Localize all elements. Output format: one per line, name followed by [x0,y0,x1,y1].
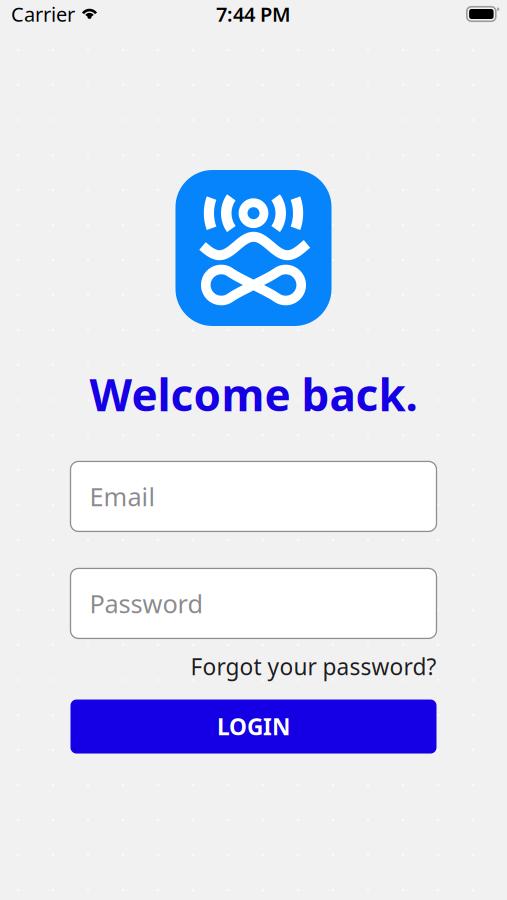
staticText: Welcome back. [89,365,417,423]
staticText: LOGIN [217,711,290,742]
staticText: Carrier [11,1,75,27]
staticText: 7:44 PM [216,1,291,27]
button[interactable]: Forgot your password? [190,651,436,681]
staticText: Email [89,480,155,513]
staticText: Forgot your password? [190,651,436,681]
button[interactable]: LOGIN [70,699,436,753]
staticText: Password [89,587,203,620]
